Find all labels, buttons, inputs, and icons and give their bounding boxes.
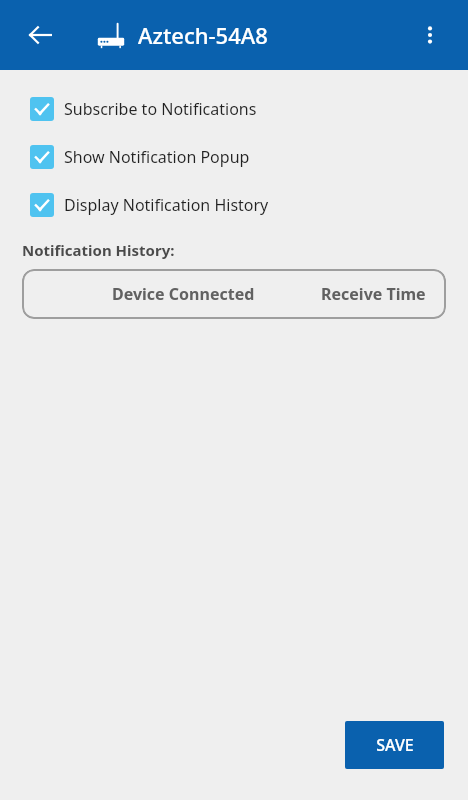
staticText: Device Connected bbox=[112, 283, 255, 305]
button[interactable]: More options bbox=[408, 13, 452, 57]
staticText: Show Notification Popup bbox=[64, 146, 250, 168]
button[interactable]: Back bbox=[18, 13, 62, 57]
staticText: Receive Time bbox=[321, 283, 426, 305]
button[interactable]: Subscribe to Notifications bbox=[0, 94, 468, 124]
staticText: Subscribe to Notifications bbox=[64, 98, 257, 120]
button[interactable]: Device Connected bbox=[22, 269, 446, 319]
button[interactable]: Display Notification History bbox=[0, 190, 468, 220]
button[interactable]: Show Notification Popup bbox=[0, 142, 468, 172]
staticText: Notification History: bbox=[22, 240, 175, 260]
button[interactable]: SAVE bbox=[345, 721, 444, 769]
staticText: Display Notification History bbox=[64, 194, 269, 216]
staticText: SAVE bbox=[376, 734, 414, 756]
staticText: Aztech-54A8 bbox=[138, 20, 268, 50]
